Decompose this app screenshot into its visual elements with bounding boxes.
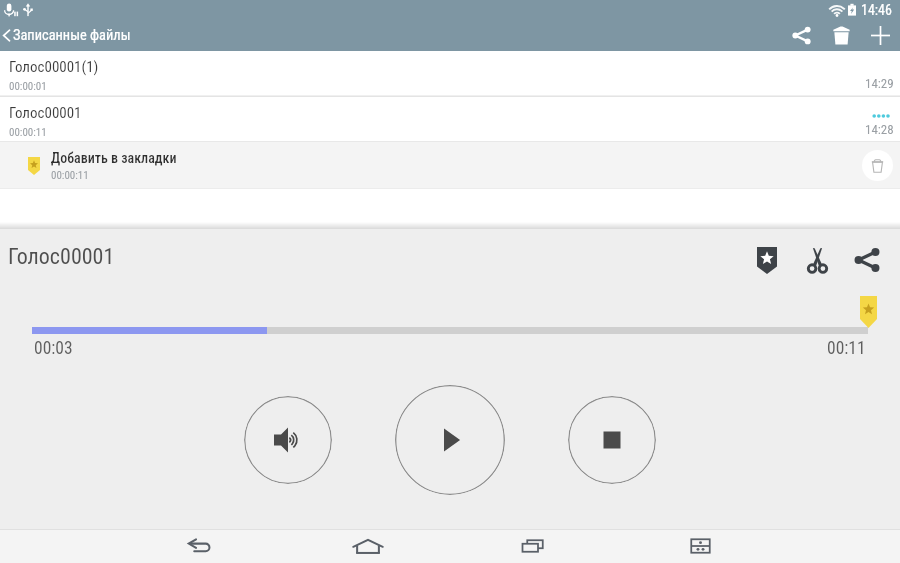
button[interactable]: Recents — [503, 529, 563, 563]
button[interactable]: Home — [338, 529, 398, 563]
button[interactable]: Trim — [794, 238, 840, 282]
staticText: Голос00001(1) — [9, 58, 99, 76]
staticText: Записанные файлы — [13, 27, 131, 44]
staticText: 14:46 — [861, 2, 892, 18]
button[interactable]: Голос00001(1) — [0, 51, 900, 96]
button[interactable]: Add — [860, 20, 900, 51]
staticText: 00:00:01 — [9, 80, 47, 93]
staticText: 00:00:11 — [9, 126, 47, 139]
button[interactable]: Play — [395, 385, 505, 495]
button[interactable]: Split screen — [670, 529, 730, 563]
button[interactable]: Добавить в закладки — [0, 142, 900, 188]
staticText: Голос00001 — [8, 244, 115, 270]
staticText: 00:00:11 — [51, 169, 89, 182]
button[interactable]: Delete — [822, 20, 860, 51]
staticText: 00:11 — [827, 338, 866, 359]
staticText: 14:28 — [865, 122, 894, 137]
button[interactable]: Share — [844, 238, 890, 282]
button[interactable]: Записанные файлы — [0, 27, 139, 44]
button[interactable]: Volume — [244, 396, 332, 484]
button[interactable]: Голос00001 — [0, 97, 900, 142]
staticText: 00:03 — [34, 338, 73, 359]
staticText: 14:29 — [865, 76, 894, 91]
button[interactable]: Back — [171, 529, 231, 563]
staticText: Добавить в закладки — [51, 150, 177, 166]
staticText: Голос00001 — [9, 104, 82, 122]
button[interactable]: Bookmark — [744, 238, 790, 282]
button[interactable]: Delete bookmark — [862, 150, 893, 181]
button[interactable]: Stop — [568, 396, 656, 484]
button[interactable]: Share — [780, 20, 822, 51]
